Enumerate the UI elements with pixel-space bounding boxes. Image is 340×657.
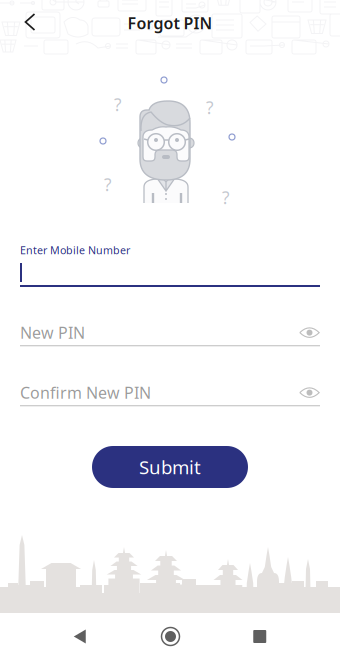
staticText: Forgot PIN [127,12,212,34]
staticText: Confirm New PIN [20,382,151,403]
button[interactable]: Home [161,627,179,645]
button[interactable]: Back [74,629,88,643]
staticText: ? [104,173,112,196]
staticText: Enter Mobile Number [20,243,130,257]
staticText: ? [206,96,214,119]
staticText: Submit [139,455,201,479]
button[interactable]: Recents [253,630,266,643]
button[interactable]: Show new PIN [299,326,320,340]
button[interactable]: Show confirm PIN [299,386,320,400]
staticText: ? [222,186,230,209]
staticText: ? [114,93,122,116]
button[interactable]: Submit [92,446,248,488]
staticText: New PIN [20,322,85,343]
button[interactable]: Back [10,2,50,42]
